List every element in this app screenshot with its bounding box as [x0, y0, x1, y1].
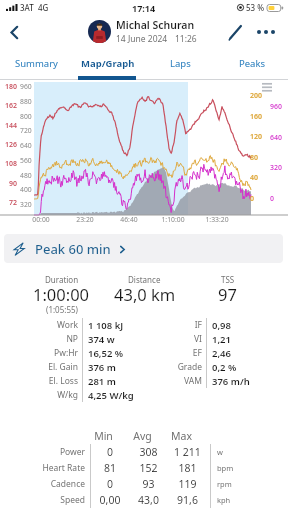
staticText: 93 [129, 477, 168, 491]
staticText: 0 [250, 194, 266, 204]
button[interactable]: Laps [144, 47, 216, 80]
staticText: rpm [217, 479, 232, 489]
button[interactable]: Back [0, 18, 28, 46]
staticText: 640 [20, 141, 32, 150]
staticText: 0,2 % [212, 361, 237, 374]
staticText: (1:05:55) [46, 304, 78, 315]
staticText: Peak 60 min [35, 240, 111, 258]
staticText: 320 [20, 200, 32, 209]
button[interactable]: More options [251, 17, 281, 47]
staticText: Avg [123, 429, 162, 443]
staticText: EF [124, 347, 202, 359]
staticText: 281 m [88, 375, 116, 388]
staticText: NP [0, 333, 78, 345]
staticText: 0 [91, 445, 129, 459]
staticText: 91,6 [168, 493, 207, 507]
button[interactable]: Chart options [260, 80, 274, 94]
staticText: 108 [3, 159, 17, 169]
staticText: 4,25 W/kg [88, 389, 134, 402]
staticText: 200 [250, 91, 266, 101]
button[interactable]: Peak 60 min [4, 234, 283, 263]
staticText: 43,0 [129, 493, 168, 507]
staticText: Min [84, 429, 123, 443]
staticText: 97 [218, 283, 237, 305]
staticText: 1:33:20 [195, 215, 239, 224]
staticText: 400 [20, 185, 32, 194]
button[interactable]: Edit [221, 18, 249, 46]
staticText: 308 [129, 445, 168, 459]
staticText: w [217, 447, 223, 457]
staticText: 144 [3, 121, 17, 131]
staticText: 119 [168, 477, 207, 491]
button[interactable]: Peaks [216, 47, 288, 80]
staticText: Peaks [239, 57, 266, 70]
staticText: 960 [270, 102, 286, 112]
staticText: 0,00 [91, 493, 129, 507]
staticText: 960 [20, 82, 32, 91]
staticText: 1 211 [168, 445, 207, 459]
staticText: 374 w [88, 333, 115, 346]
staticText: 81 [91, 461, 129, 475]
button[interactable]: Map/Graph [72, 47, 144, 80]
staticText: 0 [91, 477, 129, 491]
staticText: 2,46 [212, 347, 231, 360]
staticText: 72 [3, 198, 17, 208]
staticText: VAM [124, 375, 202, 387]
staticText: Cadence [0, 478, 85, 490]
staticText: 880 [20, 97, 32, 106]
staticText: 3AT [20, 2, 34, 13]
staticText: W/kg [0, 389, 78, 401]
staticText: Work [0, 319, 78, 331]
staticText: 53 % [246, 2, 265, 13]
staticText: 560 [20, 156, 32, 165]
staticText: Speed [0, 494, 85, 506]
staticText: Pw:Hr [0, 347, 78, 359]
staticText: 376 m/h [212, 375, 250, 388]
staticText: El. Gain [0, 361, 78, 373]
button[interactable]: Summary [0, 47, 72, 80]
staticText: 1:10:00 [151, 215, 195, 224]
staticText: 152 [129, 461, 168, 475]
staticText: 720 [20, 126, 32, 135]
staticText: Map/Graph [81, 57, 135, 70]
staticText: 4G [38, 2, 49, 13]
staticText: 14 June 2024 [116, 33, 168, 45]
staticText: Grade [124, 361, 202, 373]
staticText: 11:26 [175, 33, 197, 45]
staticText: Distance [128, 274, 161, 285]
staticText: 1:00:00 [33, 283, 90, 305]
staticText: Michal Schuran [116, 18, 195, 32]
staticText: 1,21 [212, 333, 231, 346]
staticText: 00:00 [19, 215, 63, 224]
staticText: Summary [15, 57, 58, 70]
staticText: 376 m [88, 361, 116, 374]
staticText: Heart Rate [0, 462, 85, 474]
staticText: 43,0 km [114, 283, 176, 305]
staticText: 120 [250, 132, 266, 142]
staticText: Power [0, 446, 85, 458]
staticText: 181 [168, 461, 207, 475]
staticText: Laps [170, 57, 191, 70]
staticText: 1 108 kJ [88, 319, 124, 332]
staticText: 23:20 [63, 215, 107, 224]
staticText: 40 [250, 173, 266, 183]
staticText: 320 [270, 163, 286, 173]
staticText: 0,98 [212, 319, 231, 332]
staticText: 640 [270, 133, 286, 143]
staticText: 0 [270, 194, 286, 204]
staticText: 180 [3, 82, 17, 92]
staticText: 16,52 % [88, 347, 124, 360]
staticText: 80 [250, 153, 266, 163]
staticText: 17:14 [132, 2, 156, 14]
staticText: 160 [250, 112, 266, 122]
staticText: 126 [3, 140, 17, 150]
staticText: El. Loss [0, 375, 78, 387]
staticText: kph [217, 495, 231, 505]
staticText: 46:40 [107, 215, 151, 224]
staticText: Duration [45, 274, 79, 285]
staticText: IF [124, 319, 202, 331]
staticText: Max [162, 429, 201, 443]
staticText: 90 [3, 179, 17, 189]
staticText: VI [124, 333, 202, 345]
staticText: 480 [20, 171, 32, 180]
